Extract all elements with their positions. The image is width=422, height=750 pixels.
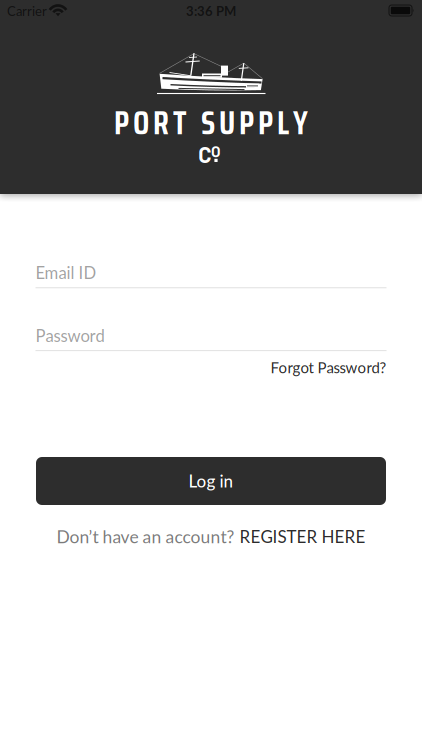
staticText: R: [153, 98, 169, 148]
button[interactable]: Log in: [36, 457, 386, 505]
button[interactable]: REGISTER HERE: [239, 526, 365, 547]
button[interactable]: Password: [35, 325, 386, 351]
staticText: Forgot Password?: [270, 358, 386, 376]
staticText: S: [201, 98, 215, 148]
staticText: T: [173, 98, 187, 148]
staticText: U: [219, 98, 235, 148]
staticText: P: [239, 98, 254, 148]
staticText: Carrier: [7, 3, 47, 19]
staticText: 3:36 PM: [186, 3, 236, 19]
staticText: REGISTER HERE: [239, 526, 365, 547]
staticText: L: [277, 98, 289, 148]
staticText: O: [211, 142, 221, 160]
staticText: Log in: [188, 471, 233, 491]
staticText: C: [198, 141, 211, 167]
staticText: Don’t have an account?: [56, 526, 234, 547]
staticText: Password: [35, 325, 104, 345]
staticText: Y: [293, 98, 308, 148]
button[interactable]: Email ID: [35, 262, 386, 288]
staticText: P: [114, 98, 129, 148]
staticText: P: [258, 98, 273, 148]
staticText: Email ID: [35, 262, 96, 282]
button[interactable]: Forgot Password?: [270, 358, 386, 376]
staticText: O: [133, 98, 149, 148]
